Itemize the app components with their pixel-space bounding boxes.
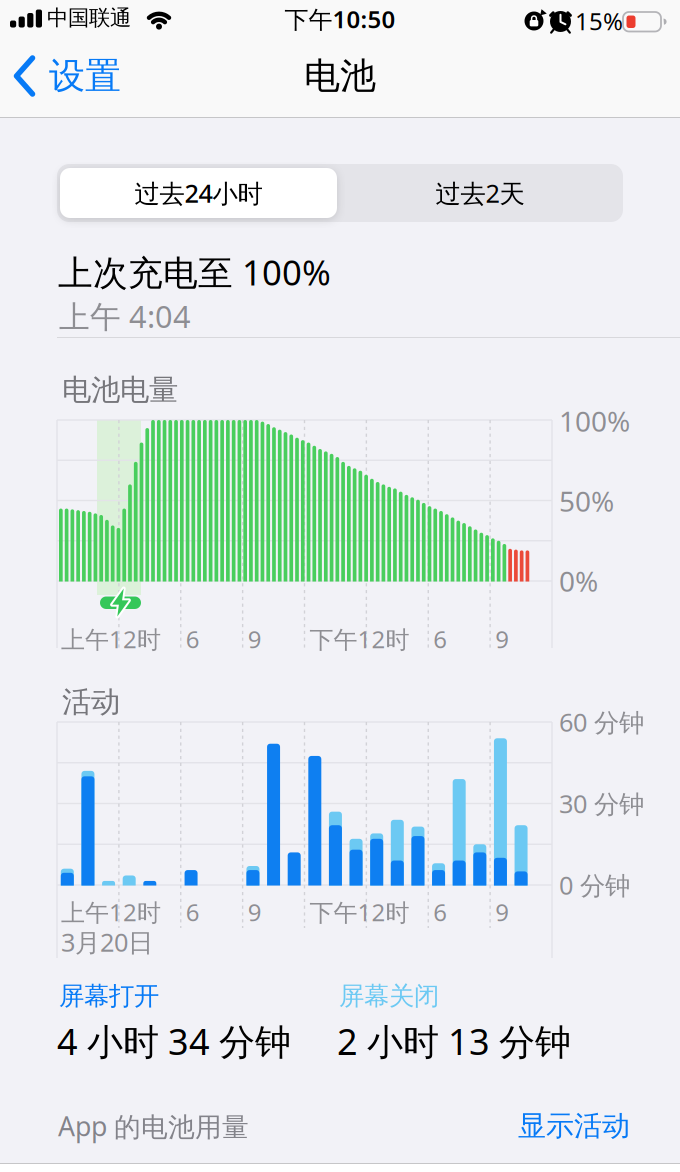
- staticText: 2 小时 13 分钟: [337, 1017, 571, 1065]
- staticText: 上午12时: [61, 896, 161, 928]
- staticText: 活动: [62, 684, 120, 720]
- staticText: 设置: [49, 54, 121, 98]
- staticText: 过去24小时: [134, 176, 262, 210]
- staticText: 6: [433, 896, 447, 928]
- staticText: 下午12时: [309, 623, 409, 655]
- staticText: 屏幕关闭: [339, 980, 439, 1011]
- staticText: 15%: [575, 5, 623, 37]
- staticText: 30 分钟: [559, 787, 644, 820]
- staticText: 100%: [559, 402, 630, 440]
- staticText: 上次充电至 100%: [58, 249, 331, 295]
- staticText: 6: [433, 623, 447, 655]
- staticText: 4 小时 34 分钟: [57, 1017, 291, 1065]
- button[interactable]: 显示活动: [0, 0, 160, 43]
- staticText: 9: [495, 896, 509, 928]
- staticText: 电池: [304, 54, 376, 98]
- button[interactable]: 返回设置: [0, 0, 190, 117]
- staticText: 9: [495, 623, 509, 655]
- staticText: 3月20日: [61, 925, 153, 959]
- staticText: 60 分钟: [559, 705, 644, 739]
- staticText: 0 分钟: [559, 868, 630, 902]
- staticText: 显示活动: [518, 1109, 630, 1143]
- staticText: 0%: [559, 562, 598, 600]
- staticText: App 的电池用量: [58, 1108, 249, 1144]
- staticText: 上午12时: [61, 623, 161, 655]
- staticText: 电池电量: [62, 372, 178, 408]
- staticText: 中国联通: [47, 5, 131, 31]
- staticText: 9: [248, 896, 262, 928]
- staticText: 下午10:50: [284, 3, 395, 35]
- staticText: 上午 4:04: [59, 296, 191, 336]
- staticText: 9: [248, 623, 262, 655]
- staticText: 屏幕打开: [59, 980, 159, 1011]
- staticText: 过去2天: [435, 176, 524, 210]
- staticText: 下午12时: [309, 896, 409, 928]
- staticText: 50%: [559, 482, 614, 520]
- button[interactable]: 过去24小时: [60, 168, 337, 218]
- staticText: 6: [186, 896, 200, 928]
- button[interactable]: 过去2天: [343, 168, 617, 218]
- staticText: 6: [186, 623, 200, 655]
